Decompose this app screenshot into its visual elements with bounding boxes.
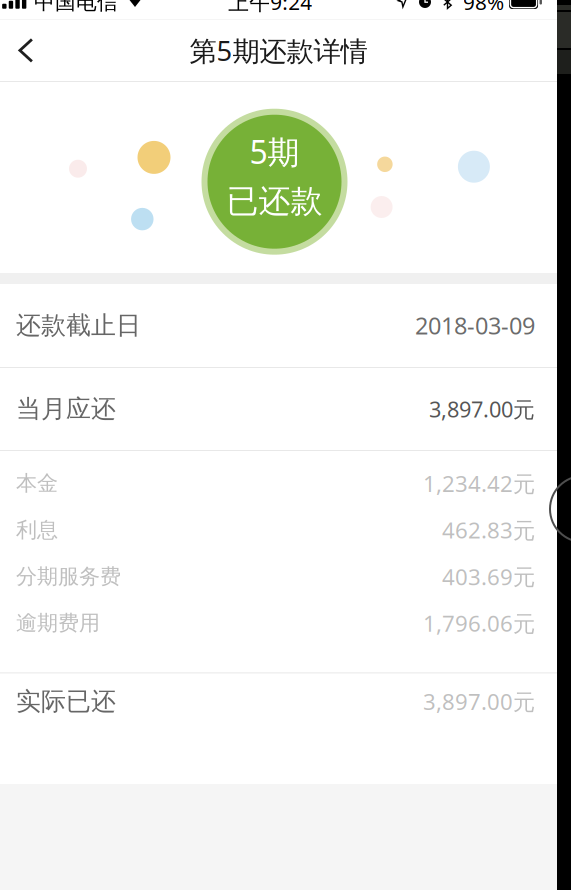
staticText: 上午9:24 bbox=[228, 0, 312, 16]
staticText: 实际已还 bbox=[16, 686, 116, 717]
staticText: 已还款 bbox=[226, 182, 322, 221]
staticText: 逾期费用 bbox=[16, 610, 100, 636]
staticText: 分期服务费 bbox=[16, 563, 121, 590]
staticText: 当月应还 bbox=[16, 393, 116, 425]
staticText: 本金 bbox=[16, 470, 58, 496]
staticText: 还款截止日 bbox=[16, 310, 141, 341]
button[interactable]: 还款截止日 bbox=[0, 284, 557, 367]
staticText: 5期 bbox=[249, 130, 299, 173]
staticText: 1,234.42元 bbox=[423, 468, 535, 498]
staticText: 2018-03-09 bbox=[415, 309, 535, 341]
staticText: 利息 bbox=[16, 517, 58, 543]
button[interactable]: 返回 bbox=[0, 24, 52, 76]
staticText: 1,796.06元 bbox=[423, 608, 535, 638]
staticText: 第5期还款详情 bbox=[189, 32, 367, 69]
staticText: 中国电信 bbox=[34, 0, 118, 15]
staticText: 3,897.00元 bbox=[423, 686, 535, 716]
button[interactable]: 当月应还 bbox=[0, 368, 557, 450]
staticText: 403.69元 bbox=[442, 561, 535, 592]
staticText: 98% bbox=[463, 0, 504, 16]
button[interactable]: 实际已还 bbox=[0, 673, 557, 729]
staticText: 3,897.00元 bbox=[429, 394, 535, 424]
staticText: 462.83元 bbox=[442, 515, 535, 545]
